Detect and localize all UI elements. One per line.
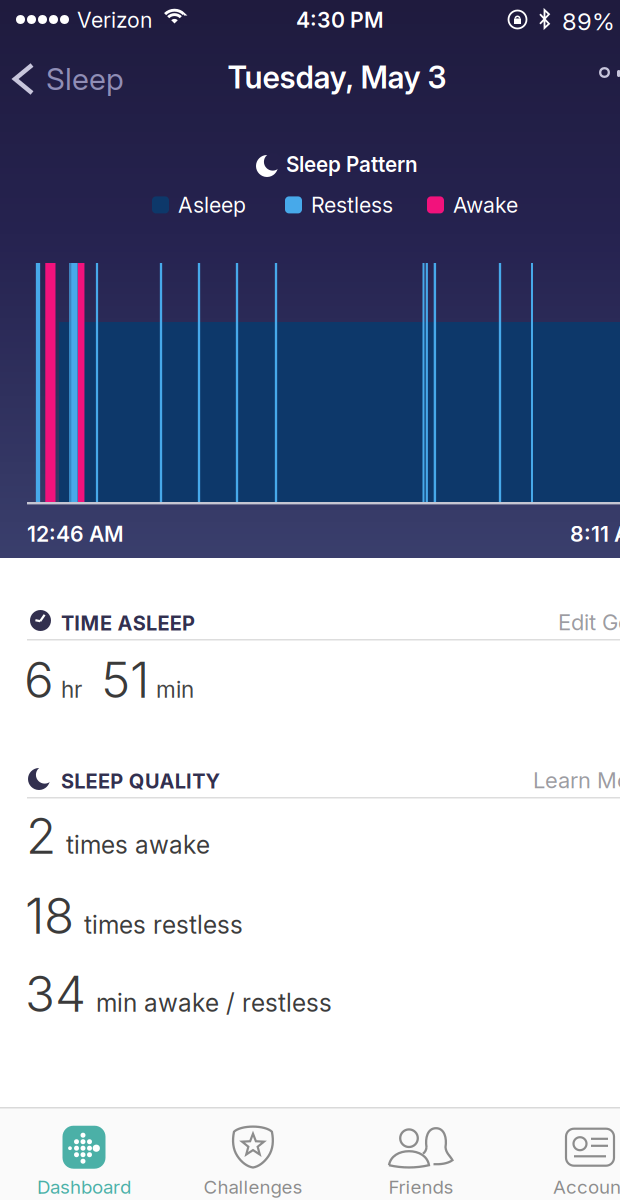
button[interactable]: Account	[515, 1116, 620, 1196]
staticText: hr	[61, 676, 82, 703]
staticText: Sleep	[46, 61, 124, 97]
staticText: 89%	[562, 7, 615, 36]
staticText: 18	[25, 886, 74, 946]
staticText: 8:11 AM	[570, 521, 620, 547]
staticText: min	[156, 676, 194, 703]
staticText: 2	[26, 806, 56, 866]
staticText: Challenges	[203, 1176, 302, 1198]
staticText: Account	[553, 1176, 620, 1198]
staticText: Sleep Pattern	[286, 152, 418, 177]
staticText: Verizon	[77, 7, 153, 33]
staticText: Learn More	[533, 767, 620, 794]
staticText: 6	[24, 650, 54, 710]
button[interactable]: Edit Goal	[558, 609, 620, 636]
staticText: Restless	[311, 192, 393, 218]
staticText: Tuesday, May 3	[227, 59, 446, 96]
button[interactable]: Sleep	[12, 59, 124, 99]
button[interactable]: Dashboard	[9, 1116, 159, 1196]
staticText: min awake / restless	[96, 988, 332, 1018]
staticText: times awake	[66, 830, 210, 860]
staticText: Friends	[388, 1176, 453, 1198]
staticText: Awake	[453, 192, 518, 218]
staticText: 12:46 AM	[27, 521, 124, 547]
staticText: times restless	[84, 910, 243, 940]
staticText: Edit Goal	[558, 609, 620, 636]
button[interactable]: Challenges	[178, 1116, 328, 1196]
button[interactable]: Friends	[346, 1116, 496, 1196]
staticText: TIME ASLEEP	[61, 611, 195, 635]
button[interactable]: Learn More	[533, 767, 620, 794]
staticText: Dashboard	[37, 1176, 131, 1198]
button[interactable]: Clock	[599, 67, 610, 78]
staticText: SLEEP QUALITY	[61, 769, 221, 793]
staticText: 34	[25, 964, 86, 1024]
staticText: 51	[101, 650, 149, 710]
staticText: 4:30 PM	[296, 7, 384, 33]
staticText: Asleep	[178, 192, 246, 218]
